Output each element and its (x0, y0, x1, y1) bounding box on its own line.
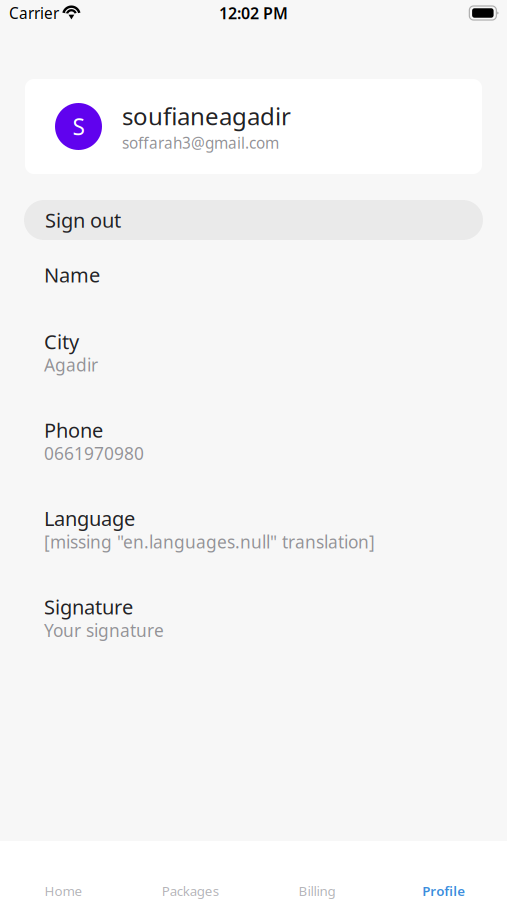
staticText: 12:02 PM (219, 2, 288, 24)
staticText: S (72, 111, 84, 142)
staticText: Packages (162, 882, 219, 900)
staticText: Phone (44, 416, 103, 443)
staticText: Language (44, 505, 135, 532)
staticText: Name (44, 261, 100, 288)
staticText: 0661970980 (44, 441, 144, 465)
staticText: soufianeagadir (122, 100, 291, 132)
staticText: [missing "en.languages.null" translation… (44, 530, 375, 554)
staticText: soffarah3@gmail.com (122, 132, 279, 153)
staticText: Sign out (45, 206, 121, 234)
button[interactable]: Billing (253, 841, 380, 900)
button[interactable]: Profile (380, 841, 507, 900)
button[interactable]: Sign out (24, 200, 483, 240)
staticText: Your signature (44, 618, 164, 642)
staticText: Agadir (44, 353, 98, 377)
staticText: Home (44, 882, 82, 900)
button[interactable]: Packages (127, 841, 254, 900)
button[interactable]: Home (0, 841, 127, 900)
staticText: Profile (422, 882, 465, 900)
staticText: Billing (298, 882, 335, 900)
staticText: City (44, 328, 79, 355)
staticText: Signature (44, 593, 133, 620)
staticText: Carrier (9, 3, 59, 23)
